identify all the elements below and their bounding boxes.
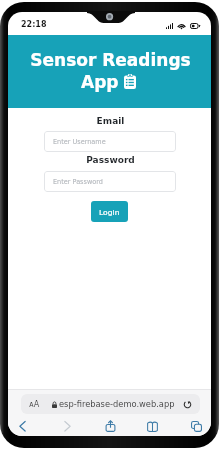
button[interactable]: Bookmarks: [142, 416, 162, 436]
staticText: App: [81, 72, 119, 92]
button[interactable]: Forward: [57, 416, 77, 436]
staticText: Enter Password: [53, 178, 103, 186]
button[interactable]: Tabs: [186, 416, 206, 436]
staticText: ᴀA: [29, 400, 40, 409]
button[interactable]: Enter Username: [44, 131, 176, 152]
staticText: esp-firebase-demo.web.app: [59, 399, 175, 409]
button[interactable]: Enter Password: [44, 171, 176, 192]
staticText: Password: [9, 155, 211, 165]
other: Reload: [183, 400, 192, 409]
staticText: Login: [99, 208, 120, 217]
button[interactable]: Back: [12, 416, 32, 436]
staticText: Sensor Readings: [9, 50, 211, 70]
staticText: 22:18: [21, 20, 47, 29]
staticText: Email: [9, 116, 211, 126]
button[interactable]: Login: [91, 201, 128, 222]
button[interactable]: Share: [100, 416, 120, 436]
button[interactable]: esp-firebase-demo.web.app: [21, 394, 200, 414]
staticText: Enter Username: [53, 138, 106, 146]
